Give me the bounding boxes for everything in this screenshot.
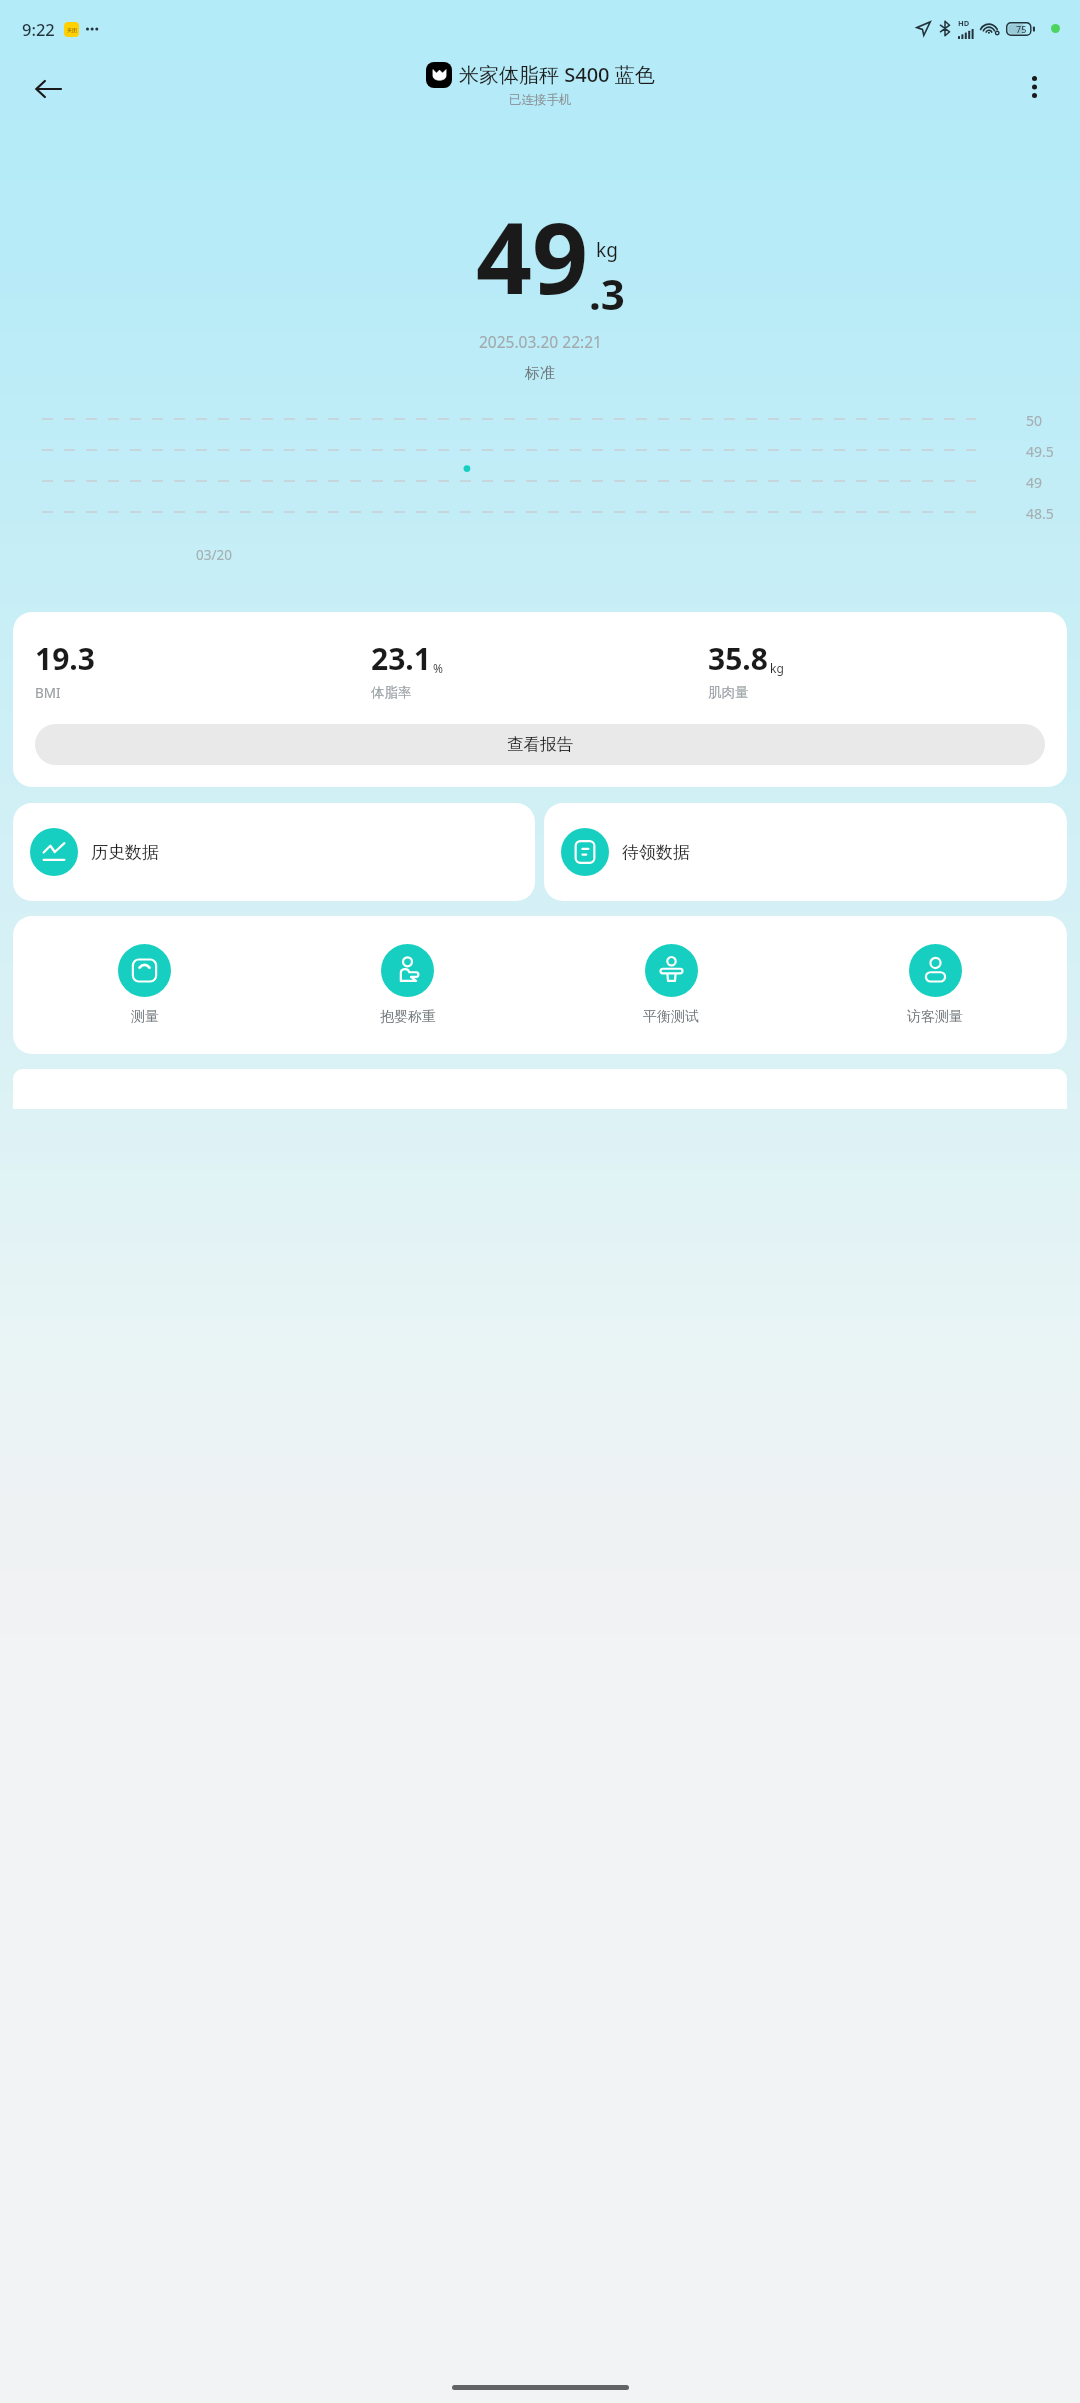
staticText: % bbox=[433, 660, 443, 676]
button[interactable]: 历史数据 bbox=[13, 803, 535, 901]
staticText: 体脂率 bbox=[371, 684, 412, 701]
staticText: 抱婴称重 bbox=[380, 1008, 436, 1026]
button[interactable]: 抱婴称重 bbox=[276, 916, 539, 1054]
staticText: 肌肉量 bbox=[708, 684, 749, 701]
staticText: 75 bbox=[1016, 23, 1027, 35]
button[interactable]: 平衡测试 bbox=[539, 916, 803, 1054]
staticText: 9:22 bbox=[22, 18, 55, 40]
staticText: 访客测量 bbox=[907, 1008, 963, 1026]
button[interactable]: 测量 bbox=[13, 916, 276, 1054]
staticText: 美团 bbox=[67, 27, 77, 33]
button[interactable]: More options bbox=[1010, 63, 1058, 111]
button[interactable]: Back bbox=[22, 63, 74, 115]
staticText: 35.8 bbox=[708, 638, 768, 679]
button[interactable]: 访客测量 bbox=[803, 916, 1067, 1054]
staticText: 米家体脂秤 S400 蓝色 bbox=[459, 61, 655, 88]
staticText: 49.5 bbox=[1026, 442, 1054, 461]
staticText: 平衡测试 bbox=[643, 1008, 699, 1026]
staticText: HD bbox=[958, 18, 970, 28]
staticText: 49 bbox=[476, 189, 589, 322]
staticText: 2025.03.20 22:21 bbox=[479, 331, 602, 352]
staticText: 已连接手机 bbox=[509, 92, 572, 108]
staticText: 查看报告 bbox=[507, 734, 573, 755]
staticText: BMI bbox=[35, 684, 61, 702]
staticText: 48.5 bbox=[1026, 504, 1054, 523]
staticText: 50 bbox=[1026, 411, 1043, 430]
staticText: 标准 bbox=[525, 364, 555, 383]
staticText: 49 bbox=[1026, 473, 1043, 492]
staticText: 19.3 bbox=[35, 638, 95, 679]
staticText: 测量 bbox=[131, 1008, 159, 1026]
button[interactable]: 查看报告 bbox=[35, 724, 1045, 765]
button[interactable]: 待领数据 bbox=[544, 803, 1067, 901]
staticText: 待领数据 bbox=[622, 842, 690, 863]
staticText: 23.1 bbox=[371, 638, 431, 679]
staticText: 历史数据 bbox=[91, 842, 159, 863]
staticText: kg bbox=[596, 237, 618, 263]
staticText: .3 bbox=[589, 265, 625, 322]
staticText: kg bbox=[770, 660, 784, 676]
staticText: 03/20 bbox=[196, 546, 232, 564]
